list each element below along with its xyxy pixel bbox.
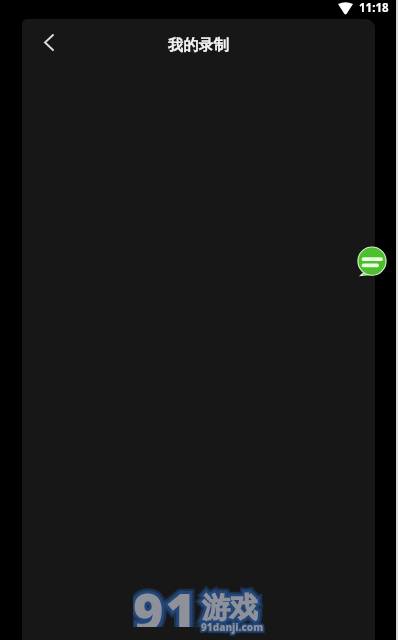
staticText: 91danji.com — [201, 620, 264, 634]
button[interactable]: Chat — [357, 247, 387, 277]
button[interactable]: Back — [27, 22, 69, 64]
staticText: 游戏 — [202, 590, 258, 625]
staticText: 91 — [133, 575, 198, 627]
staticText: 91 — [133, 575, 198, 627]
staticText: 11:18 — [359, 0, 389, 16]
staticText: 游戏 — [202, 590, 258, 625]
staticText: 我的录制 — [168, 36, 230, 55]
staticText: 91danji.com — [201, 620, 264, 634]
staticText: 游戏 — [202, 590, 258, 625]
staticText: 91danji.com — [201, 620, 264, 634]
staticText: 91 — [133, 575, 198, 627]
